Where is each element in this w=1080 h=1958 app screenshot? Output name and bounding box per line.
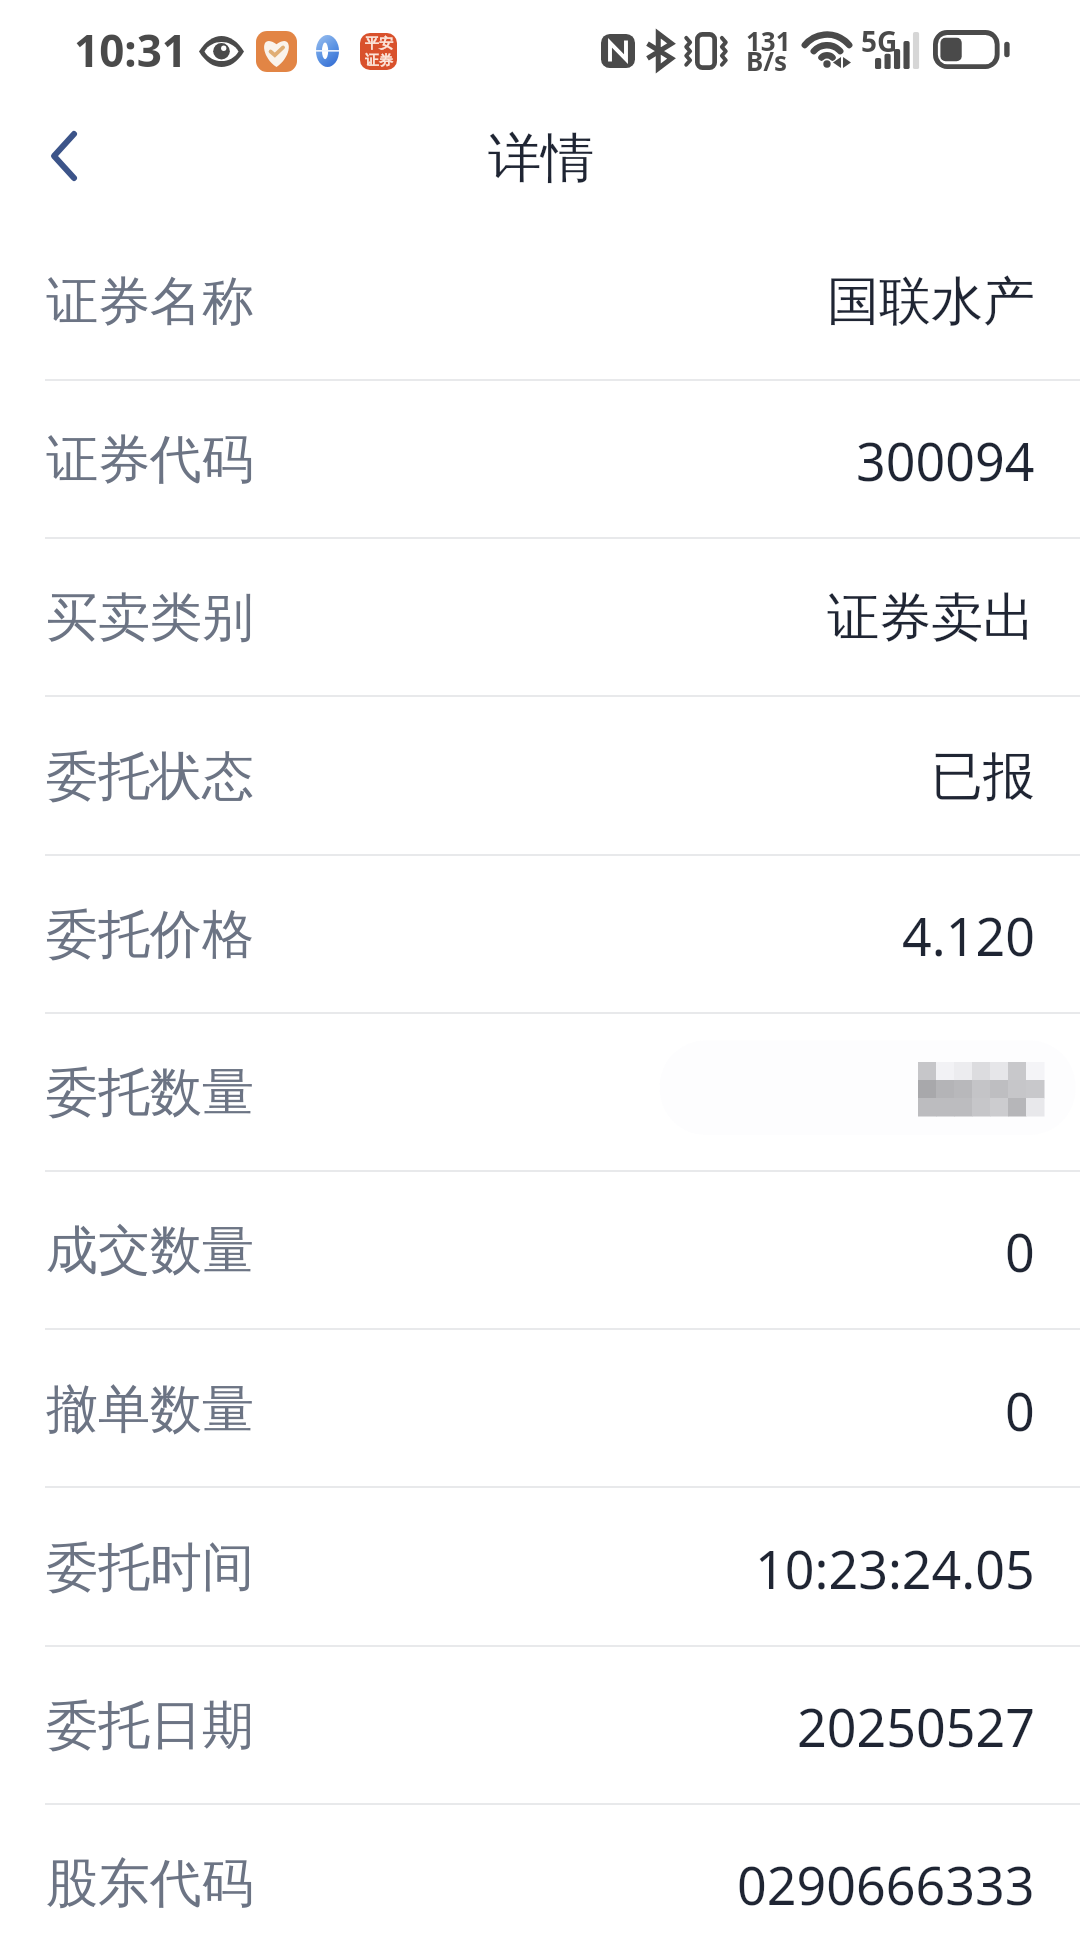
staticText: 详情	[488, 125, 594, 192]
staticText: 0290666333	[737, 1849, 1035, 1920]
staticText: 委托日期	[46, 1693, 254, 1759]
staticText: 平安 证券	[365, 35, 393, 69]
button[interactable]: 成交数量	[0, 1172, 1080, 1330]
staticText: 0	[1005, 1375, 1035, 1446]
button[interactable]: 委托价格	[0, 856, 1080, 1014]
button[interactable]: 买卖类别	[0, 539, 1080, 697]
staticText: 成交数量	[46, 1218, 254, 1284]
button[interactable]: 委托时间	[0, 1489, 1080, 1647]
staticText: 委托数量	[46, 1060, 254, 1126]
staticText: 股东代码	[46, 1851, 254, 1917]
button[interactable]: 委托日期	[0, 1647, 1080, 1805]
staticText: 委托价格	[46, 902, 254, 968]
staticText: 10:31	[74, 20, 188, 80]
staticText: 0	[1005, 1216, 1035, 1287]
button[interactable]: 证券名称	[0, 223, 1080, 381]
button[interactable]: 证券代码	[0, 381, 1080, 539]
staticText: 5G	[861, 22, 898, 60]
staticText: 国联水产	[827, 269, 1035, 335]
staticText: 证券名称	[46, 269, 254, 335]
staticText: 131 B/s	[746, 23, 791, 78]
staticText: 委托状态	[46, 744, 254, 810]
staticText: 300094	[856, 425, 1035, 496]
button[interactable]: 股东代码	[0, 1805, 1080, 1958]
staticText: 10:23:24.05	[755, 1533, 1035, 1604]
staticText: 已报	[931, 744, 1035, 810]
staticText: 4.120	[902, 900, 1035, 971]
button[interactable]: Back	[10, 98, 118, 206]
button[interactable]: 委托状态	[0, 698, 1080, 856]
staticText: 买卖类别	[46, 585, 254, 651]
button[interactable]: 委托数量	[0, 1014, 1080, 1172]
staticText: 证券卖出	[827, 585, 1035, 651]
staticText: 证券代码	[46, 427, 254, 493]
staticText: 撤单数量	[46, 1377, 254, 1443]
button[interactable]: 撤单数量	[0, 1331, 1080, 1489]
staticText: 20250527	[797, 1691, 1035, 1762]
staticText: 委托时间	[46, 1535, 254, 1601]
